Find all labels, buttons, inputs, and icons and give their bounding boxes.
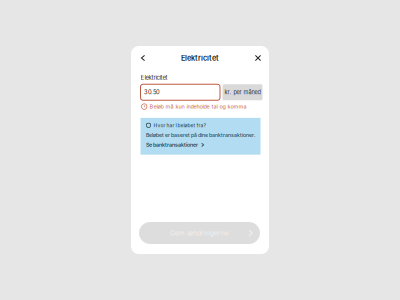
button[interactable]: Back <box>135 50 151 66</box>
staticText: Elektricitet <box>181 54 219 62</box>
staticText: Hvor har I beløbet fra? <box>153 122 206 128</box>
staticText: 30.50 <box>144 89 160 96</box>
staticText: kr. per måned <box>224 89 260 96</box>
staticText: Beløb må kun indeholde tal og komma <box>149 103 246 110</box>
staticText: Gem ændringerne <box>170 229 229 237</box>
staticText: Se banktransaktioner <box>146 142 198 148</box>
button[interactable]: Close <box>250 50 266 66</box>
staticText: Beløbet er baseret på dine banktransakti… <box>146 132 255 138</box>
staticText: Elektricitet <box>140 74 167 81</box>
button[interactable]: Se banktransaktioner <box>146 142 205 148</box>
button[interactable]: Gem ændringerne <box>139 222 260 244</box>
